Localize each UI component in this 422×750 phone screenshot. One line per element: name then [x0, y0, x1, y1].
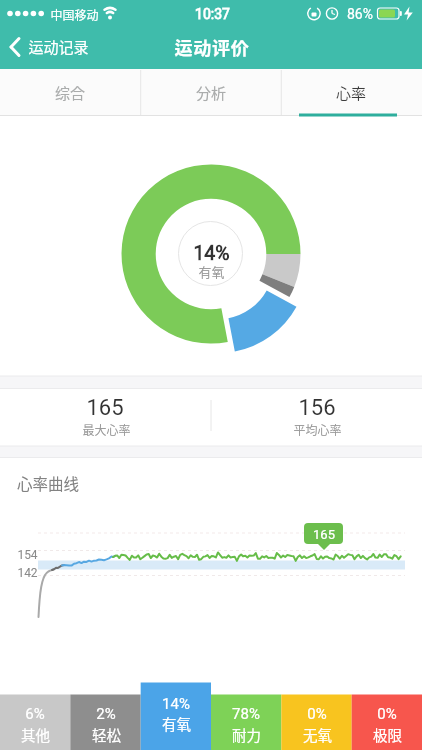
staticText: 有氧 [162, 713, 191, 734]
staticText: 6% [25, 705, 45, 723]
button[interactable]: 分析 [141, 69, 282, 116]
staticText: 86% [347, 6, 373, 22]
button[interactable] [352, 695, 422, 750]
staticText: 165 [313, 527, 335, 542]
staticText: 14% [162, 695, 190, 713]
staticText: 0% [377, 705, 397, 723]
staticText: 平均心率 [293, 421, 342, 438]
staticText: 其他 [21, 724, 50, 745]
staticText: 156 [298, 395, 336, 421]
staticText: 有氧 [198, 262, 225, 281]
staticText: 轻松 [92, 724, 121, 745]
button[interactable] [0, 695, 70, 750]
staticText: 165 [86, 395, 124, 421]
button[interactable] [281, 695, 351, 750]
staticText: 14% [193, 242, 230, 265]
staticText: 中国移动 [50, 6, 99, 23]
button[interactable] [0, 26, 100, 69]
staticText: 78% [232, 705, 260, 723]
staticText: 心率 [336, 82, 367, 104]
button[interactable]: 心率 [281, 69, 422, 116]
staticText: 运动记录 [28, 36, 89, 58]
staticText: 154 [17, 548, 38, 562]
staticText: 无氧 [303, 724, 332, 745]
staticText: 综合 [55, 82, 86, 104]
staticText: 10:37 [195, 6, 230, 22]
button[interactable] [141, 683, 211, 750]
button[interactable]: 综合 [0, 69, 141, 116]
staticText: 分析 [196, 82, 227, 104]
staticText: 心率曲线 [17, 472, 80, 494]
staticText: 最大心率 [82, 421, 131, 438]
staticText: 0% [307, 705, 327, 723]
staticText: 运动评价 [174, 34, 250, 60]
button[interactable] [211, 695, 281, 750]
button[interactable] [70, 695, 140, 750]
staticText: 142 [17, 566, 38, 580]
staticText: 极限 [373, 724, 402, 745]
staticText: 2% [96, 705, 116, 723]
staticText: 耐力 [232, 724, 261, 745]
